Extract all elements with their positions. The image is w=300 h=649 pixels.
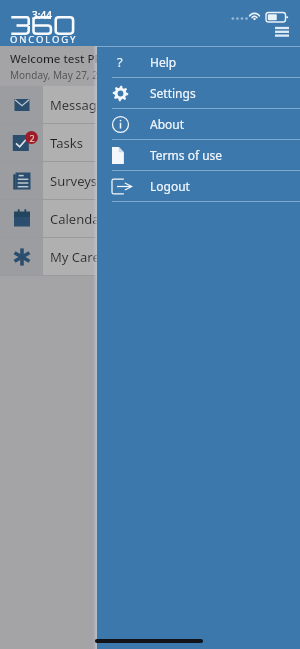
button[interactable]: Open navigation menu bbox=[270, 20, 294, 44]
button[interactable]: About bbox=[97, 109, 300, 139]
staticText: My Care bbox=[50, 248, 100, 266]
staticText: 2 bbox=[29, 132, 35, 144]
staticText: Logout bbox=[150, 178, 190, 194]
staticText: Terms of use bbox=[150, 147, 223, 163]
staticText: 3:44 bbox=[32, 8, 52, 22]
staticText: Calendar bbox=[50, 210, 105, 228]
button[interactable]: Logout bbox=[97, 171, 300, 201]
staticText: Settings bbox=[150, 85, 196, 101]
staticText: Messages bbox=[50, 96, 111, 114]
staticText: About bbox=[150, 116, 185, 132]
staticText: ? bbox=[117, 53, 123, 71]
staticText: Help bbox=[150, 54, 177, 70]
button[interactable]: ? bbox=[97, 47, 300, 77]
staticText: Welcome test PP bbox=[10, 51, 102, 67]
staticText: Monday, May 27, 2019 bbox=[10, 68, 116, 82]
staticText: Surveys bbox=[50, 172, 98, 190]
button[interactable]: Settings bbox=[97, 78, 300, 108]
button[interactable]: Terms of use bbox=[97, 140, 300, 170]
staticText: Tasks bbox=[50, 134, 83, 152]
staticText: ONCOLOGY bbox=[10, 33, 78, 46]
